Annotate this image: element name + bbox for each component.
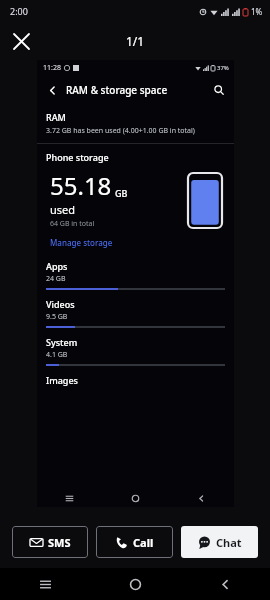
staticText: Videos (46, 298, 75, 310)
staticText: 1% (251, 6, 263, 17)
staticText: 11:28 (43, 63, 61, 73)
button[interactable]: Call (96, 526, 173, 558)
staticText: 55.18 (50, 169, 112, 202)
button[interactable]: System (37, 332, 234, 370)
staticText: 9.5 GB (46, 312, 68, 322)
button[interactable]: Home (90, 568, 180, 600)
staticText: System (46, 336, 78, 348)
staticText: GB (115, 187, 128, 199)
staticText: Chat (216, 535, 242, 550)
staticText: 3.72 GB has been used (4.00+1.00 GB in t… (46, 126, 195, 136)
button[interactable]: Videos (37, 294, 234, 332)
button[interactable]: Search (211, 82, 227, 98)
staticText: 1/1 (126, 33, 145, 49)
button[interactable]: Apps (37, 256, 234, 294)
staticText: Images (46, 374, 78, 386)
button[interactable]: Manage storage (50, 237, 113, 248)
staticText: 64 GB in total (50, 219, 95, 229)
staticText: RAM (46, 111, 66, 123)
button[interactable]: Recents (37, 489, 102, 507)
staticText: 37% (217, 64, 229, 72)
button[interactable]: RAM (37, 104, 234, 143)
button[interactable]: Back (168, 489, 234, 507)
staticText: Phone storage (46, 151, 109, 163)
button[interactable]: Close (6, 26, 36, 56)
staticText: Apps (46, 260, 68, 272)
staticText: 4.1 GB (46, 350, 68, 360)
staticText: SMS (48, 535, 71, 550)
staticText: RAM & storage space (66, 83, 168, 97)
button[interactable]: SMS (12, 526, 88, 558)
button[interactable]: Chat (181, 526, 258, 558)
button[interactable]: Back (180, 568, 270, 600)
staticText: Manage storage (50, 237, 113, 248)
staticText: Call (133, 535, 154, 550)
staticText: used (50, 202, 76, 217)
button[interactable]: Recents (0, 568, 90, 600)
button[interactable]: Home (102, 489, 168, 507)
staticText: 2:00 (10, 5, 28, 17)
staticText: 24 GB (46, 274, 66, 284)
button[interactable]: Back (44, 82, 60, 98)
